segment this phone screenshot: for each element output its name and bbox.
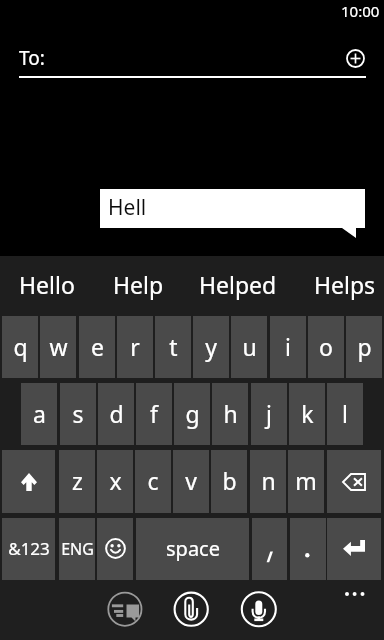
staticText: q — [13, 331, 28, 362]
button[interactable]: a — [21, 383, 57, 445]
staticText: j — [266, 398, 272, 429]
button[interactable]: k — [289, 383, 325, 445]
staticText: t — [169, 331, 178, 362]
button[interactable]: f — [136, 383, 172, 445]
button[interactable]: More options — [336, 584, 380, 606]
button[interactable]: g — [174, 383, 210, 445]
button[interactable] — [100, 189, 365, 238]
staticText: 10:00 — [341, 1, 380, 21]
staticText: y — [205, 331, 217, 362]
button[interactable]: Help — [93, 254, 183, 314]
staticText: To: — [19, 45, 45, 71]
button[interactable]: s — [60, 383, 96, 445]
staticText: l — [342, 398, 348, 429]
button[interactable]: u — [231, 316, 267, 378]
button[interactable]: Add recipient — [344, 47, 367, 70]
button[interactable]: Send — [105, 589, 145, 629]
button[interactable]: Attach — [171, 589, 211, 629]
button[interactable]: Enter — [327, 518, 381, 581]
button[interactable]: w — [40, 316, 76, 378]
button[interactable]: Shift — [2, 450, 55, 513]
staticText: Helps — [314, 269, 376, 300]
button[interactable]: p — [346, 316, 382, 378]
button[interactable]: d — [98, 383, 134, 445]
staticText: h — [223, 398, 238, 429]
button[interactable]: r — [117, 316, 153, 378]
staticText: z — [72, 465, 83, 496]
staticText: Hello — [19, 269, 75, 300]
staticText: o — [319, 331, 333, 362]
button[interactable]: Voice input — [239, 589, 279, 629]
button[interactable]: Backspace — [327, 450, 381, 513]
button[interactable]: y — [193, 316, 229, 378]
staticText: u — [242, 331, 257, 362]
button[interactable]: l — [327, 383, 363, 445]
staticText: n — [261, 465, 276, 496]
button[interactable]: Comma — [252, 518, 287, 581]
staticText: ENG — [61, 538, 94, 560]
staticText: c — [147, 465, 159, 496]
button[interactable]: &123 — [2, 518, 55, 581]
button[interactable]: v — [173, 450, 209, 513]
button[interactable]: z — [59, 450, 95, 513]
staticText: a — [33, 398, 46, 429]
button[interactable]: j — [251, 383, 287, 445]
button[interactable]: t — [155, 316, 191, 378]
staticText: s — [72, 398, 84, 429]
staticText: Hell — [108, 193, 147, 222]
button[interactable]: space — [136, 518, 249, 581]
button[interactable]: q — [2, 316, 38, 378]
button[interactable]: ENG — [59, 518, 95, 581]
staticText: Helped — [199, 269, 277, 300]
button[interactable]: e — [79, 316, 115, 378]
staticText: p — [357, 331, 372, 362]
staticText: &123 — [8, 537, 50, 560]
staticText: d — [109, 398, 124, 429]
staticText: i — [285, 331, 291, 362]
button[interactable]: Helped — [193, 254, 283, 314]
button[interactable]: i — [270, 316, 306, 378]
staticText: k — [301, 398, 314, 429]
staticText: m — [295, 465, 317, 496]
staticText: x — [109, 465, 122, 496]
staticText: Help — [113, 269, 164, 300]
button[interactable]: h — [212, 383, 248, 445]
button[interactable]: b — [211, 450, 247, 513]
staticText: v — [185, 465, 197, 496]
button[interactable]: o — [308, 316, 344, 378]
button[interactable]: Emoji — [97, 518, 133, 581]
staticText: e — [91, 331, 104, 362]
button[interactable]: n — [250, 450, 286, 513]
staticText: g — [185, 398, 200, 429]
staticText: space — [166, 535, 220, 562]
button[interactable]: Helps — [300, 254, 384, 314]
button[interactable]: Period — [290, 518, 326, 581]
button[interactable]: m — [288, 450, 324, 513]
staticText: b — [222, 465, 237, 496]
staticText: f — [150, 398, 158, 429]
button[interactable]: c — [135, 450, 171, 513]
button[interactable]: Hello — [2, 254, 92, 314]
button[interactable]: x — [97, 450, 133, 513]
staticText: r — [130, 331, 140, 362]
staticText: w — [49, 331, 68, 362]
